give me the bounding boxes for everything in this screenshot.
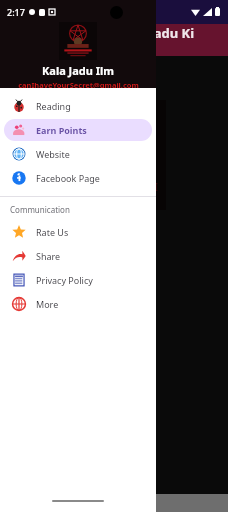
staticText: Share [36, 250, 61, 262]
staticText: Communication [10, 204, 70, 215]
button[interactable]: Privacy Policy [4, 269, 152, 291]
button[interactable] [46, 224, 112, 240]
staticText: Kala Jadu Ki Kitab [118, 24, 228, 56]
staticText: KALA JADU ILM [69, 179, 158, 194]
button[interactable]: More [4, 293, 152, 315]
button[interactable]: Earn Points [4, 119, 152, 141]
staticText: Website [36, 148, 70, 160]
staticText: Reading [36, 100, 71, 112]
staticText: More [36, 298, 59, 310]
button[interactable]: Rate Us [4, 221, 152, 243]
staticText: Earn Points [36, 124, 87, 136]
staticText: KI KITAB [97, 194, 129, 204]
staticText: Privacy Policy [36, 274, 93, 286]
staticText: Facebook Page [36, 172, 100, 184]
staticText: 2:17 [7, 6, 25, 18]
button[interactable]: Share [4, 245, 152, 267]
button[interactable] [59, 22, 97, 60]
staticText: canIhaveYourSecret@gmail.com [18, 80, 139, 88]
staticText: Rate Us [36, 226, 69, 238]
button[interactable]: Reading [4, 95, 152, 117]
staticText: Kala Jadu Ilm [42, 63, 115, 78]
button[interactable]: Facebook Page [4, 167, 152, 189]
button[interactable]: Website [4, 143, 152, 165]
